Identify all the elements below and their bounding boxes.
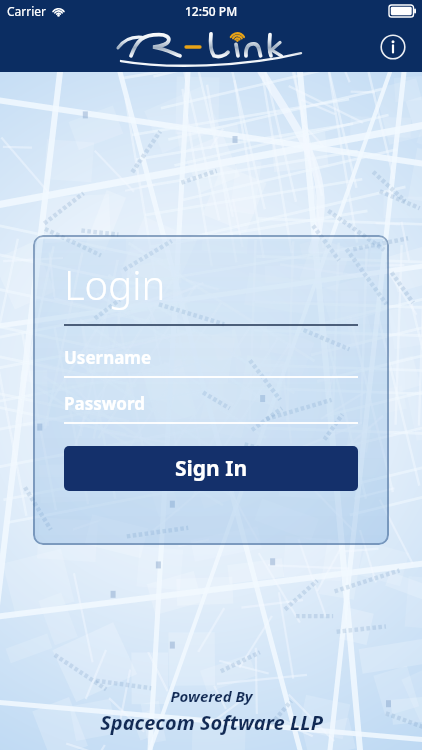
staticText: Sign In	[175, 454, 248, 483]
button[interactable]: Username	[64, 346, 358, 378]
staticText: Powered By	[170, 686, 253, 706]
staticText: Username	[64, 346, 152, 369]
button[interactable]: Sign In	[64, 446, 358, 491]
button[interactable]: Information	[378, 32, 408, 62]
staticText: Spacecom Software LLP	[100, 709, 323, 736]
button[interactable]: Password	[64, 392, 358, 424]
staticText: Login	[64, 257, 166, 311]
staticText: Password	[64, 392, 145, 415]
staticText: Carrier	[7, 3, 47, 19]
staticText: 12:50 PM	[185, 3, 238, 19]
